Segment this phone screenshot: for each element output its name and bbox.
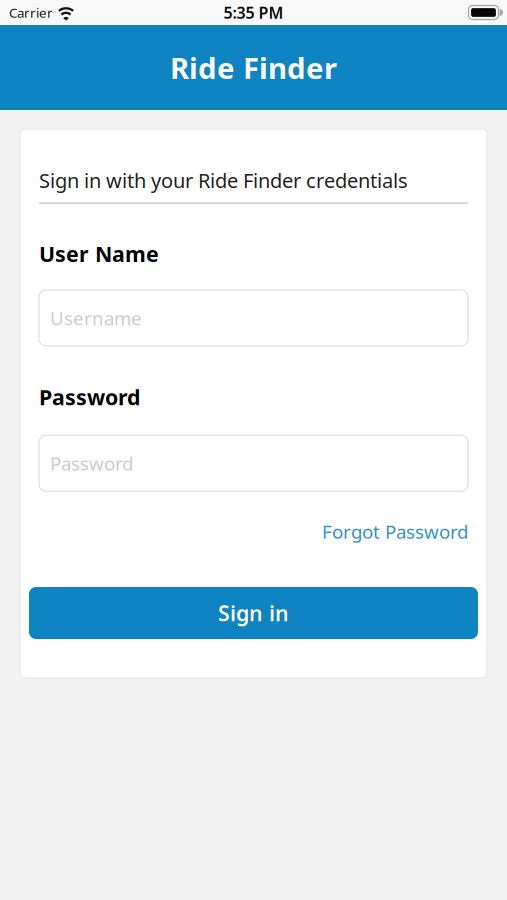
button[interactable]: Sign in bbox=[29, 587, 478, 639]
staticText: Password bbox=[39, 383, 140, 411]
button[interactable]: Username bbox=[39, 290, 468, 346]
button[interactable]: Forgot Password bbox=[322, 519, 468, 544]
button[interactable]: Password bbox=[39, 435, 468, 491]
staticText: Ride Finder bbox=[170, 48, 337, 87]
staticText: User Name bbox=[39, 240, 159, 268]
staticText: Carrier bbox=[9, 4, 53, 21]
staticText: Sign in with your Ride Finder credential… bbox=[39, 167, 408, 194]
staticText: Forgot Password bbox=[322, 519, 468, 544]
staticText: Username bbox=[50, 305, 142, 330]
staticText: 5:35 PM bbox=[223, 2, 283, 23]
staticText: Sign in bbox=[218, 599, 289, 627]
staticText: Password bbox=[50, 451, 133, 476]
